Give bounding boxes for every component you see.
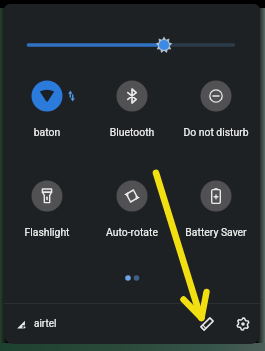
- button[interactable]: Settings: [233, 314, 253, 334]
- staticText: Auto-rotate: [90, 226, 174, 238]
- button[interactable]: Edit: [197, 314, 217, 334]
- button[interactable]: Auto-rotate: [90, 174, 174, 236]
- staticText: Do not disturb: [174, 126, 258, 138]
- staticText: airtel: [34, 318, 57, 330]
- button[interactable]: airtel: [17, 314, 57, 334]
- button[interactable]: Do not disturb: [174, 74, 258, 136]
- staticText: Bluetooth: [90, 126, 174, 138]
- button[interactable]: Brightness: [27, 36, 235, 54]
- staticText: Flashlight: [5, 226, 89, 238]
- button[interactable]: baton: [5, 74, 89, 136]
- button[interactable]: Battery Saver: [174, 174, 258, 236]
- staticText: baton: [5, 126, 89, 138]
- button[interactable]: Flashlight: [5, 174, 89, 236]
- button[interactable]: Bluetooth: [90, 74, 174, 136]
- staticText: Battery Saver: [174, 226, 258, 238]
